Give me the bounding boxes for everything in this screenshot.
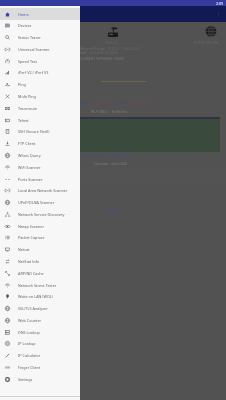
staticText: Web Counter [18,318,42,323]
button[interactable]: ARP/ND Cache [0,267,80,279]
staticText: Network Stress Tester [18,283,57,288]
staticText: Wi-Fi SSID : TheWorks [91,109,128,114]
staticText: Nmap Scanner [18,224,45,229]
button[interactable]: Ports Scanner [0,173,80,185]
button[interactable]: Packet Capture [0,231,80,243]
staticText: Traceroute [18,106,37,111]
staticText: Speed Test [18,59,37,64]
button[interactable]: iPerf V2 / iPerf V3 [0,66,80,78]
staticText: Unsupported [130,100,152,105]
staticText: DNS Lookup [18,330,40,335]
staticText: Upload : [115,100,130,105]
staticText: 10.0.2.2 [105,40,118,45]
staticText: CURRENT NETWORK USAGE [80,56,125,61]
staticText: Network Range : 10.0.2.1 - 10.0.2.254 [80,46,139,51]
button[interactable]: Whois Query [0,149,80,161]
staticText: Home [18,12,29,17]
staticText: IP Calculator [18,353,41,358]
staticText: Netcat [18,247,30,252]
button[interactable]: Wake on LAN (WOL) [0,290,80,302]
staticText: Packet Capture [18,235,45,240]
staticText: WiFi Scanner [18,165,41,170]
staticText: Unsupported [90,100,112,105]
button[interactable]: Multi Ping [0,90,80,102]
staticText: Wake on LAN (WOL) [18,294,53,299]
button[interactable]: NetStat Info [0,255,80,267]
button[interactable]: Nmap Scanner [0,220,80,232]
staticText: Signal : 80 [103,208,120,213]
button[interactable]: Network Stress Tester [0,279,80,291]
staticText: Finger Client [18,365,41,370]
staticText: SSH (Secure Shell) [18,129,50,134]
staticText: 2:09 [216,1,224,6]
staticText: Operator : elisa (244) [94,161,128,166]
button[interactable]: Ping [0,78,80,90]
staticText: Status Tracer [18,35,41,40]
button[interactable]: IP Calculator [0,349,80,361]
button[interactable]: Home [0,8,80,20]
button[interactable]: UPnP/DLNA Scanner [0,196,80,208]
staticText: Local Area Network Scanner [18,188,68,193]
staticText: Ports Scanner [18,177,43,182]
staticText: Universal Scanner [18,47,50,52]
staticText: Signal : -50 Dbm | Strength : 80% [79,153,132,158]
staticText: Down : [78,100,90,105]
button[interactable]: Local Area Network Scanner [0,184,80,196]
button[interactable]: SSL/TLS Analyzer [0,302,80,314]
staticText: iPerf V2 / iPerf V3 [18,70,49,75]
button[interactable]: WiFi Scanner [0,161,80,173]
button[interactable]: Netcat [0,243,80,255]
button[interactable]: Devices [0,19,80,31]
staticText: Multi Ping [18,94,36,99]
button[interactable]: IP Lookup [0,337,80,349]
staticText: FTP Client [18,141,36,146]
staticText: SSL/TLS Analyzer [18,306,48,311]
staticText: IP Lookup [18,341,36,346]
staticText: 91.156.109.108 [194,40,219,45]
staticText: ARP/ND Cache [18,271,44,276]
staticText: Ping [18,82,26,87]
button[interactable]: DNS Lookup [0,326,80,338]
button[interactable]: Universal Scanner [0,43,80,55]
button[interactable]: Traceroute [0,102,80,114]
staticText: Devices [18,23,32,28]
button[interactable]: Network Service Discovery [0,208,80,220]
button[interactable]: Telnet [0,114,80,126]
staticText: Whois Query [18,153,41,158]
button[interactable]: Web Counter [0,314,80,326]
button[interactable]: Speed Test [0,55,80,67]
staticText: Network Service Discovery [18,212,65,217]
staticText: UPnP/DLNA Scanner [18,200,55,205]
button[interactable]: Finger Client [0,361,80,373]
button[interactable]: Status Tracer [0,31,80,43]
staticText: Telnet [18,118,29,123]
button[interactable]: SSH (Secure Shell) [0,125,80,137]
button[interactable]: More options [214,10,223,19]
staticText: MAC : 52:54:00:12:34:56 [80,50,118,55]
staticText: Settings [18,377,33,382]
button[interactable]: FTP Client [0,137,80,149]
button[interactable]: Settings [0,373,80,385]
staticText: NetStat Info [18,259,40,264]
